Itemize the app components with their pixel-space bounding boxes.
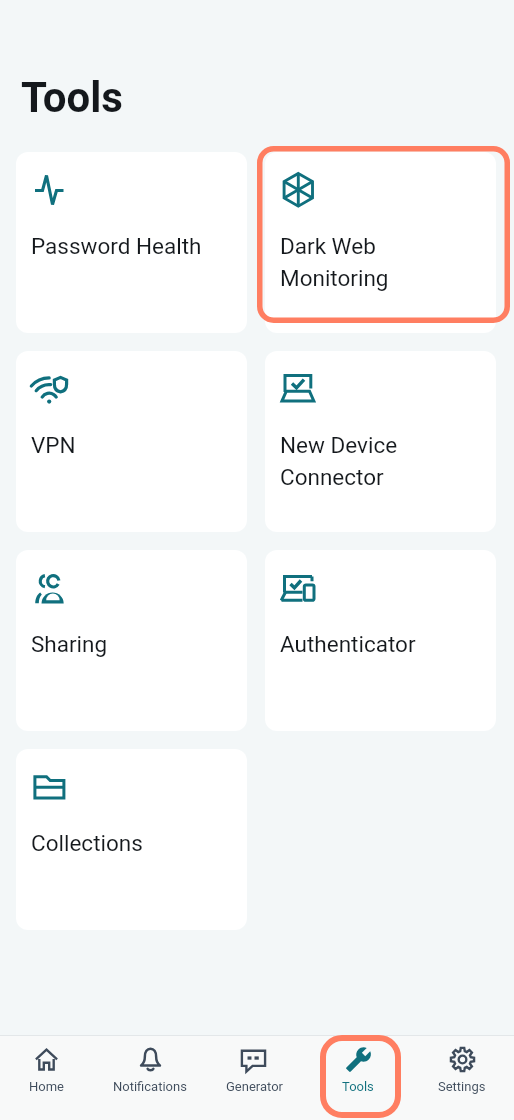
staticText: Sharing: [31, 631, 108, 657]
staticText: Tools: [342, 1079, 374, 1094]
staticText: Generator: [226, 1079, 283, 1094]
staticText: Settings: [438, 1079, 486, 1094]
button[interactable]: Authenticator: [265, 550, 496, 731]
button[interactable]: VPN: [16, 351, 247, 532]
button[interactable]: Generator: [202, 1036, 306, 1120]
button[interactable]: Settings: [410, 1036, 514, 1120]
button[interactable]: Sharing: [16, 550, 247, 731]
button[interactable]: Home: [0, 1036, 98, 1120]
staticText: Tools: [21, 73, 123, 122]
staticText: New Device Connector: [280, 432, 398, 491]
button[interactable]: Tools: [306, 1036, 410, 1120]
staticText: Password Health: [31, 233, 202, 259]
staticText: Notifications: [113, 1079, 187, 1094]
staticText: Authenticator: [280, 631, 416, 657]
staticText: Collections: [31, 830, 143, 856]
staticText: VPN: [31, 432, 76, 458]
button[interactable]: New Device Connector: [265, 351, 496, 532]
button[interactable]: Notifications: [98, 1036, 202, 1120]
button[interactable]: Dark Web Monitoring: [265, 152, 496, 333]
button[interactable]: Collections: [16, 749, 247, 930]
staticText: Home: [29, 1079, 64, 1094]
staticText: Dark Web Monitoring: [280, 233, 389, 292]
button[interactable]: Password Health: [16, 152, 247, 333]
